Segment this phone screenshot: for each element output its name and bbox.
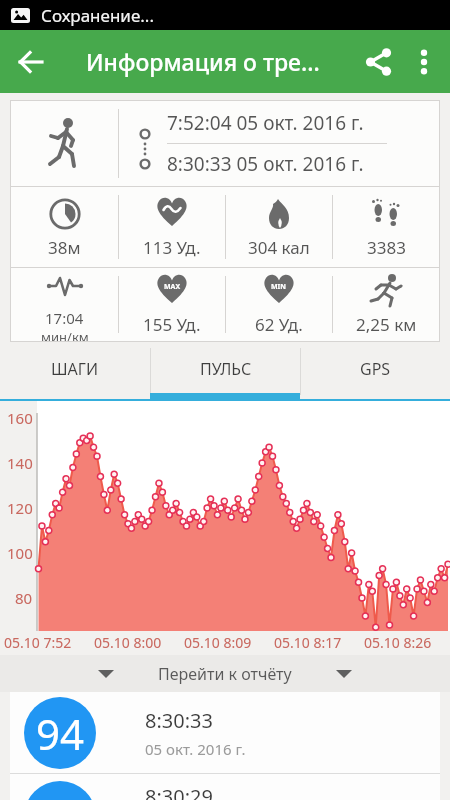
staticText: Перейти к отчёту: [158, 663, 292, 685]
staticText: 140: [7, 453, 33, 473]
button[interactable]: GPS: [301, 342, 450, 401]
staticText: GPS: [360, 358, 391, 380]
staticText: 05.10 7:52: [4, 633, 72, 652]
staticText: ПУЛЬС: [200, 358, 252, 380]
button[interactable]: 38м: [11, 187, 118, 267]
staticText: 155 Уд.: [143, 313, 201, 336]
button[interactable]: [404, 30, 450, 93]
staticText: мин/км: [41, 328, 89, 341]
button[interactable]: 304 кал: [226, 187, 332, 267]
staticText: 160: [7, 408, 33, 428]
button[interactable]: Перейти к отчёту: [0, 655, 450, 692]
staticText: 304 кал: [248, 236, 310, 259]
staticText: 120: [7, 498, 33, 518]
staticText: 05.10 8:17: [274, 633, 342, 652]
button[interactable]: MAX: [119, 268, 225, 341]
button[interactable]: 3383: [333, 187, 439, 267]
staticText: 05 окт. 2016 г.: [145, 739, 246, 759]
staticText: MIN: [271, 282, 287, 292]
staticText: 05.10 8:26: [364, 633, 432, 652]
staticText: 8:30:29: [145, 783, 213, 800]
staticText: 8:30:33: [145, 707, 213, 734]
button[interactable]: 17:04: [11, 268, 118, 341]
button[interactable]: 113 Уд.: [119, 187, 225, 267]
staticText: Сохранение...: [41, 4, 154, 27]
button[interactable]: [0, 30, 62, 93]
staticText: 62 Уд.: [255, 313, 303, 336]
staticText: 8:30:33 05 окт. 2016 г.: [167, 151, 364, 177]
staticText: 100: [7, 543, 33, 563]
button[interactable]: [354, 30, 404, 93]
button[interactable]: ПУЛЬС: [151, 342, 300, 401]
staticText: 05.10 8:00: [94, 633, 162, 652]
staticText: 94: [36, 705, 85, 762]
staticText: 7:52:04 05 окт. 2016 г.: [167, 110, 364, 136]
staticText: Информация о тре...: [86, 46, 320, 77]
staticText: 80: [15, 588, 33, 608]
button[interactable]: 94: [10, 692, 440, 773]
staticText: MAX: [164, 282, 181, 292]
staticText: 113 Уд.: [143, 236, 201, 259]
staticText: 2,25 км: [356, 313, 417, 336]
staticText: 17:04: [45, 308, 84, 328]
staticText: 38м: [48, 236, 81, 259]
button[interactable]: MIN: [226, 268, 332, 341]
button[interactable]: ШАГИ: [0, 342, 150, 401]
staticText: 3383: [367, 236, 406, 259]
button[interactable]: 2,25 км: [333, 268, 439, 341]
staticText: 05.10 8:09: [184, 633, 252, 652]
button[interactable]: 8:30:29: [10, 774, 440, 800]
staticText: ШАГИ: [51, 358, 99, 380]
